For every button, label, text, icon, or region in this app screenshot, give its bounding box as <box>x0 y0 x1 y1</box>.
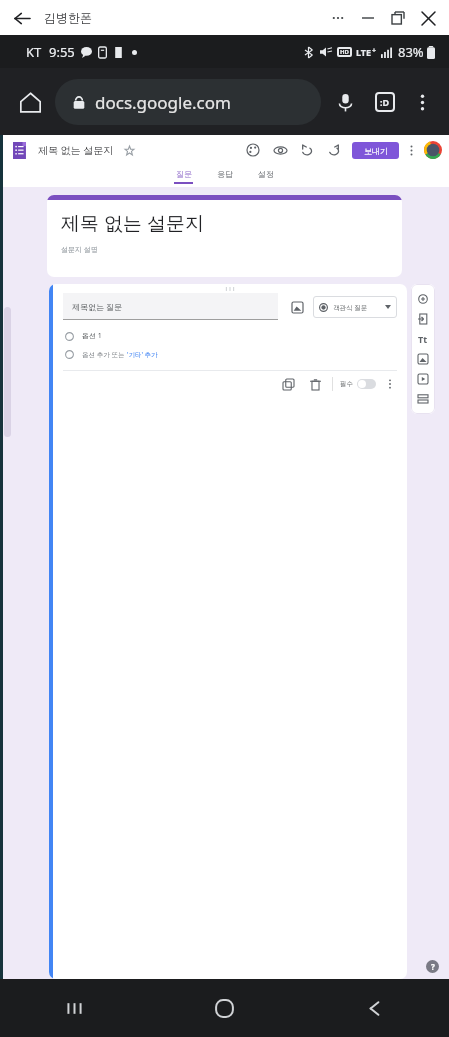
staticText: 설문지 설명 <box>61 245 98 255</box>
button[interactable]: Home <box>149 979 299 1037</box>
button[interactable]: Add video <box>413 369 433 389</box>
staticText: '기타' 추가 <box>127 350 158 359</box>
staticText: 필수 <box>340 380 353 388</box>
button[interactable]: Redo <box>323 139 345 161</box>
button[interactable]: Home <box>10 82 50 122</box>
staticText: 9:55 <box>49 43 75 61</box>
button[interactable]: Close <box>413 3 443 33</box>
button[interactable]: Undo <box>296 139 318 161</box>
staticText: 응답 <box>217 169 233 179</box>
button[interactable]: 옵션 추가 또는 <box>53 350 407 359</box>
button[interactable]: 제목없는 질문 <box>49 284 407 979</box>
staticText: 보내기 <box>364 146 388 156</box>
button[interactable]: 제목 없는 설문지 <box>47 195 402 277</box>
button[interactable]: Minimize <box>353 3 383 33</box>
button[interactable]: Add image <box>288 298 306 316</box>
staticText: 설정 <box>258 169 274 179</box>
button[interactable]: docs.google.com <box>55 79 321 125</box>
button[interactable]: 보내기 <box>352 142 399 159</box>
button[interactable]: Import questions <box>413 309 433 329</box>
button[interactable]: Preview <box>269 139 291 161</box>
button[interactable]: Add title and description <box>413 329 433 349</box>
button[interactable]: 설정 <box>250 169 281 184</box>
staticText: 제목없는 질문 <box>72 301 123 312</box>
staticText: Tt <box>418 333 428 345</box>
button[interactable]: More <box>323 3 353 33</box>
button[interactable]: 제목 없는 설문지 <box>38 143 114 157</box>
staticText: 김병한폰 <box>44 10 92 25</box>
staticText: 83% <box>398 43 424 61</box>
button[interactable]: 옵션 1 <box>53 331 407 341</box>
button[interactable]: Delete <box>305 374 325 394</box>
button[interactable]: Required toggle <box>357 379 376 389</box>
button[interactable]: 제목없는 질문 <box>63 293 278 319</box>
staticText: 제목 없는 설문지 <box>61 210 204 236</box>
staticText: + <box>372 46 377 56</box>
button[interactable]: Add image <box>413 349 433 369</box>
button[interactable]: Help <box>426 960 439 973</box>
button[interactable]: Back <box>8 4 36 32</box>
button[interactable]: Account <box>422 139 444 161</box>
staticText: 옵션 1 <box>82 331 102 341</box>
staticText: HD <box>340 48 349 56</box>
button[interactable]: Google Forms <box>9 139 31 161</box>
staticText: KT <box>26 43 42 61</box>
button[interactable]: Duplicate <box>278 374 298 394</box>
staticText: 객관식 질문 <box>333 303 368 312</box>
button[interactable]: Restore <box>383 3 413 33</box>
staticText: LTE <box>356 46 372 58</box>
staticText: docs.google.com <box>95 91 231 114</box>
staticText: 질문 <box>176 169 192 179</box>
button[interactable]: More <box>401 140 421 160</box>
button[interactable]: 질문 <box>168 169 199 184</box>
button[interactable]: 응답 <box>209 169 240 184</box>
button[interactable]: Customize theme <box>242 139 264 161</box>
staticText: :D <box>380 96 390 108</box>
button[interactable]: More options <box>381 375 399 393</box>
button[interactable]: More options <box>405 85 439 119</box>
button[interactable]: Add section <box>413 389 433 409</box>
button[interactable]: Voice search <box>325 82 365 122</box>
button[interactable]: Recent apps <box>0 979 149 1037</box>
button[interactable]: Add question <box>413 289 433 309</box>
button[interactable]: 객관식 질문 <box>313 296 397 318</box>
button[interactable]: Tabs <box>365 82 405 122</box>
button[interactable]: Star <box>120 141 138 159</box>
staticText: 옵션 추가 또는 <box>82 350 127 359</box>
button[interactable]: Back <box>299 979 449 1037</box>
staticText: ? <box>431 961 435 972</box>
